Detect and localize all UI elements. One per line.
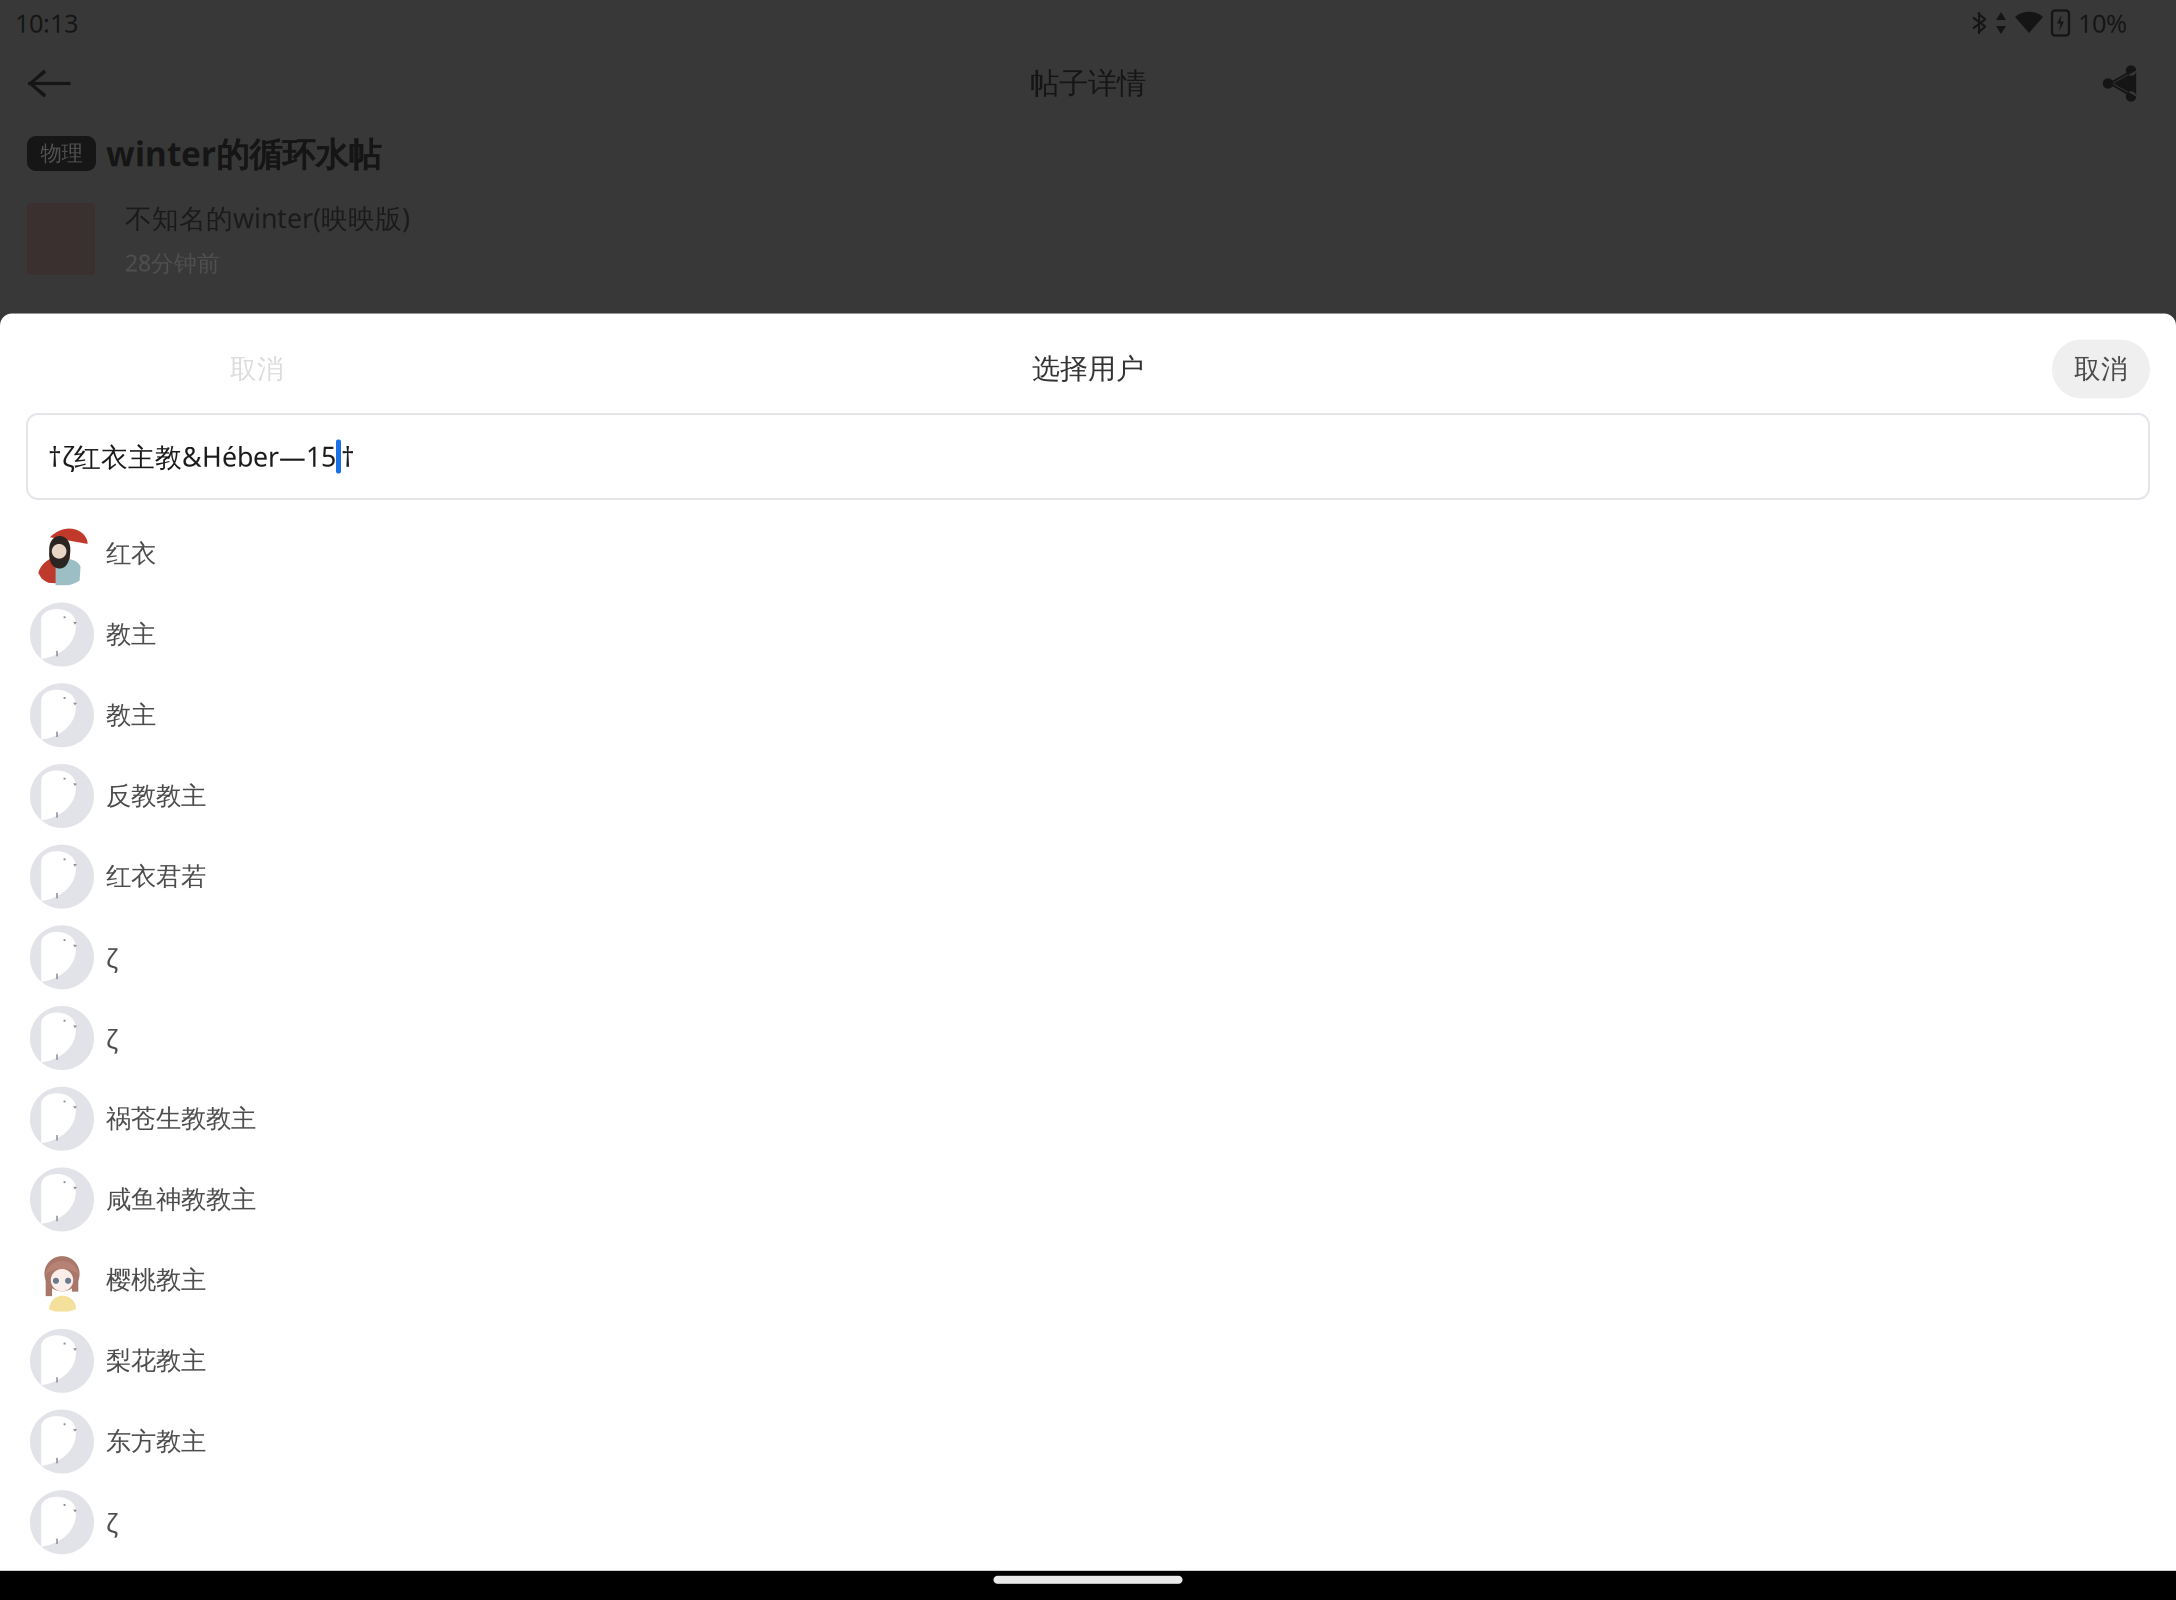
staticText: ζ: [106, 940, 118, 974]
staticText: 10:13: [15, 6, 78, 40]
button[interactable]: ζ: [0, 917, 2176, 998]
staticText: ζ: [106, 1021, 118, 1055]
staticText: 教主: [106, 700, 156, 731]
button[interactable]: ζ: [0, 1563, 2176, 1600]
button[interactable]: 红衣: [0, 513, 2176, 594]
button[interactable]: 红衣君若: [0, 836, 2176, 917]
staticText: 红衣君若: [106, 861, 206, 892]
staticText: 选择用户: [1032, 352, 1144, 386]
button[interactable]: 教主: [0, 675, 2176, 756]
staticText: winter的循环水帖: [106, 131, 381, 176]
button[interactable]: 教主: [0, 594, 2176, 675]
staticText: 咸鱼神教教主: [106, 1184, 256, 1215]
staticText: 取消: [230, 353, 284, 385]
button[interactable]: 反教教主: [0, 756, 2176, 836]
staticText: 28分钟前: [125, 248, 220, 278]
button[interactable]: 取消: [2052, 340, 2150, 398]
staticText: 祸苍生教教主: [106, 1103, 256, 1134]
staticText: †ζ红衣主教&Héber—15: [48, 439, 336, 474]
button[interactable]: 梨花教主: [0, 1320, 2176, 1401]
staticText: 取消: [2074, 353, 2128, 385]
staticText: 樱桃教主: [106, 1265, 206, 1296]
staticText: 东方教主: [106, 1426, 206, 1457]
staticText: 梨花教主: [106, 1345, 206, 1376]
staticText: 10%: [2078, 6, 2127, 40]
button[interactable]: 咸鱼神教教主: [0, 1159, 2176, 1240]
staticText: ζ: [106, 1505, 118, 1539]
button[interactable]: ζ: [0, 998, 2176, 1078]
staticText: 反教教主: [106, 780, 206, 811]
staticText: 帖子详情: [1030, 65, 1146, 101]
staticText: †: [341, 439, 355, 474]
button[interactable]: 樱桃教主: [0, 1240, 2176, 1320]
button[interactable]: Back: [12, 45, 88, 121]
button[interactable]: 东方教主: [0, 1401, 2176, 1482]
button[interactable]: 取消: [230, 353, 284, 385]
button[interactable]: Share: [2082, 45, 2158, 121]
staticText: 不知名的winter(映映版): [125, 200, 410, 236]
button[interactable]: ζ: [0, 1482, 2176, 1563]
staticText: 教主: [106, 619, 156, 650]
staticText: 物理: [40, 140, 82, 167]
staticText: 红衣: [106, 538, 156, 569]
button[interactable]: 祸苍生教教主: [0, 1078, 2176, 1159]
